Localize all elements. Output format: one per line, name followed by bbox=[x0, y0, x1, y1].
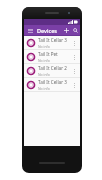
staticText: Tail It Pet Tracker bbox=[38, 51, 71, 57]
button[interactable]: More options bbox=[71, 37, 77, 49]
staticText: No info bbox=[38, 58, 50, 63]
staticText: Tail It Cellar 3 HD bbox=[38, 79, 71, 85]
button[interactable]: Tail It Pet Tracker bbox=[24, 50, 80, 63]
staticText: No info bbox=[38, 86, 50, 91]
button[interactable]: More options bbox=[71, 51, 77, 63]
button[interactable]: More options bbox=[71, 79, 77, 91]
staticText: Tail It Cellar 2 bbox=[38, 65, 67, 71]
button[interactable]: More options bbox=[71, 65, 77, 77]
button[interactable]: Tail It Cellar 2 bbox=[24, 64, 80, 77]
button[interactable]: Tail It Cellar 3 bbox=[24, 36, 80, 49]
staticText: No info bbox=[38, 44, 50, 49]
staticText: Devices bbox=[37, 27, 57, 34]
button[interactable]: Add device bbox=[62, 26, 71, 35]
button[interactable]: Tail It Cellar 3 HD bbox=[24, 78, 80, 91]
staticText: No info bbox=[38, 72, 50, 77]
button[interactable]: Search bbox=[71, 26, 79, 35]
button[interactable]: Open navigation menu bbox=[27, 27, 34, 34]
staticText: Tail It Cellar 3 bbox=[38, 37, 67, 43]
